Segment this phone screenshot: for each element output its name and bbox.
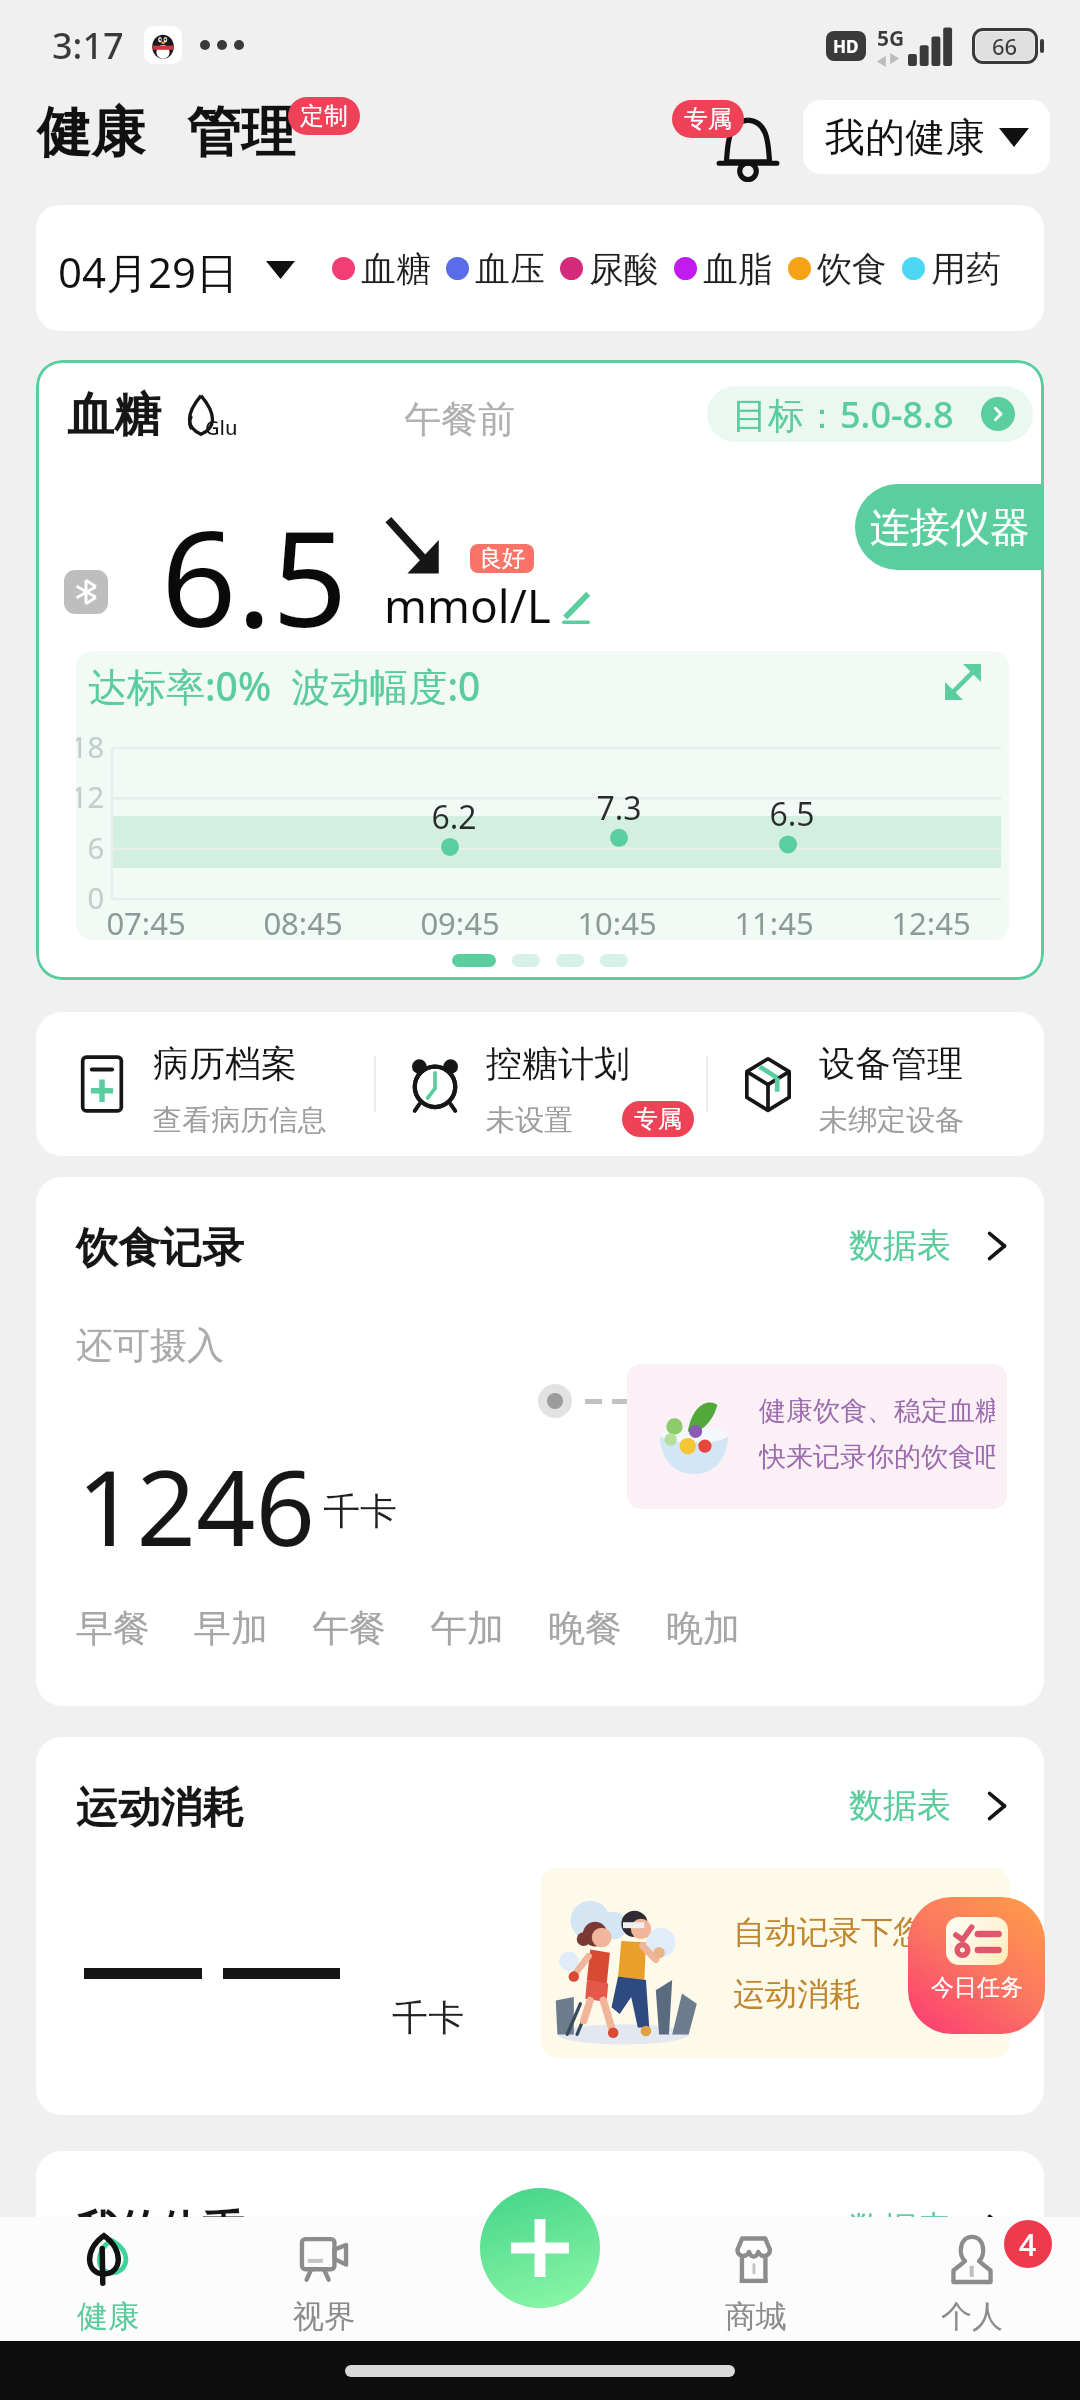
staticText: 早加	[194, 1605, 268, 1652]
staticText: 尿酸	[589, 247, 659, 291]
staticText: 12:45	[881, 902, 981, 940]
staticText: 早餐	[76, 1605, 150, 1652]
staticText: 4	[1019, 2224, 1037, 2265]
staticText: 专属	[684, 104, 732, 134]
button[interactable]: Add record	[480, 2188, 600, 2308]
staticText: 专属	[634, 1104, 682, 1134]
staticText: 12	[76, 777, 104, 816]
button[interactable]: 04月29日	[36, 205, 1044, 331]
staticText: 5G	[877, 24, 905, 53]
staticText: 千卡	[392, 1995, 464, 2040]
staticText: 午餐	[312, 1605, 386, 1652]
staticText: 3:17	[52, 21, 124, 70]
button[interactable]: 自动记录下您的	[541, 1868, 1010, 2058]
staticText: 定制	[300, 101, 348, 131]
button[interactable]: 晚餐	[548, 1605, 622, 1652]
button[interactable]: 健康饮食、稳定血糖，	[627, 1364, 1007, 1509]
button[interactable]: 午餐	[312, 1605, 386, 1652]
staticText: 运动消耗	[733, 1974, 861, 2014]
staticText: 血糖	[67, 386, 161, 445]
staticText: 自动记录下您的	[733, 1912, 957, 1952]
staticText: 千卡	[323, 1488, 397, 1535]
staticText: 6.2	[409, 795, 499, 839]
button[interactable]: 今日任务	[908, 1897, 1045, 2034]
staticText: 血糖	[361, 247, 431, 291]
staticText: 运动消耗	[76, 1782, 244, 1835]
staticText: mmol/L	[384, 574, 551, 637]
staticText: 7.3	[574, 786, 664, 830]
button[interactable]: 我的健康	[803, 100, 1050, 174]
staticText: 病历档案	[153, 1041, 297, 1086]
staticText: 我的健康	[825, 112, 985, 162]
staticText: 用药	[931, 247, 1001, 291]
button[interactable]: 数据表	[841, 1218, 1023, 1273]
button[interactable]: Expand chart	[935, 654, 991, 710]
staticText: 查看病历信息	[153, 1102, 327, 1139]
button[interactable]: 设备管理	[702, 1012, 1033, 1156]
staticText: 晚加	[666, 1605, 740, 1652]
button[interactable]: 控糖计划	[369, 1012, 700, 1156]
staticText: Glu	[205, 414, 238, 441]
staticText: 目标：5.0-8.8	[732, 390, 954, 439]
button[interactable]: 商城	[648, 2217, 864, 2341]
staticText: 08:45	[253, 902, 353, 940]
staticText: 血压	[475, 247, 545, 291]
staticText: 我的体重	[76, 2205, 244, 2258]
staticText: 视界	[293, 2297, 355, 2336]
staticText: 数据表	[849, 1224, 951, 1267]
staticText: 设备管理	[819, 1041, 963, 1086]
staticText: 09:45	[410, 902, 510, 940]
staticText: 数据表	[849, 1784, 951, 1827]
staticText: 控糖计划	[486, 1041, 630, 1086]
button[interactable]: 早餐	[76, 1605, 150, 1652]
staticText: 04月29日	[58, 243, 239, 300]
staticText: 未绑定设备	[819, 1102, 964, 1139]
staticText: 午餐前	[404, 396, 515, 443]
button[interactable]: 健康	[0, 2217, 216, 2341]
button[interactable]: 目标：5.0-8.8	[707, 386, 1033, 442]
staticText: 健康	[77, 2297, 139, 2336]
staticText: 07:45	[96, 902, 196, 940]
button[interactable]: 数据表	[841, 2201, 1023, 2256]
staticText: 18	[76, 727, 104, 766]
staticText: 连接仪器	[870, 502, 1030, 552]
staticText: 6	[76, 828, 104, 867]
staticText: 午加	[430, 1605, 504, 1652]
staticText: 还可摄入	[76, 1322, 224, 1369]
button[interactable]: Notifications	[672, 88, 802, 188]
staticText: 达标率:0% 波动幅度:0	[88, 659, 481, 712]
button[interactable]: 视界	[216, 2217, 432, 2341]
staticText: 6.5	[161, 486, 348, 666]
staticText: 1246	[77, 1435, 315, 1577]
button[interactable]: 午加	[430, 1605, 504, 1652]
staticText: 6.5	[747, 792, 837, 836]
staticText: 个人	[941, 2297, 1003, 2336]
staticText: 商城	[725, 2297, 787, 2336]
button[interactable]: 早加	[194, 1605, 268, 1652]
button[interactable]: 连接仪器	[855, 484, 1044, 570]
staticText: 数据表	[849, 2207, 951, 2250]
staticText: 晚餐	[548, 1605, 622, 1652]
staticText: 0	[76, 878, 104, 917]
staticText: 未设置	[486, 1102, 573, 1139]
button[interactable]: 数据表	[841, 1778, 1023, 1833]
staticText: 健康 管理	[37, 93, 296, 167]
staticText: 快来记录你的饮食吧	[759, 1440, 995, 1474]
staticText: HD	[833, 35, 859, 58]
staticText: 11:45	[724, 902, 824, 940]
staticText: 饮食记录	[76, 1222, 244, 1275]
staticText: 饮食	[817, 247, 887, 291]
staticText: 66	[992, 31, 1018, 61]
staticText: 健康饮食、稳定血糖，	[759, 1394, 995, 1428]
button[interactable]: 病历档案	[36, 1012, 367, 1156]
button[interactable]: 晚加	[666, 1605, 740, 1652]
staticText: 血脂	[703, 247, 773, 291]
staticText: 良好	[479, 544, 525, 573]
staticText: 今日任务	[931, 1973, 1023, 2002]
button[interactable]: 个人	[864, 2217, 1080, 2341]
staticText: 10:45	[567, 902, 667, 940]
